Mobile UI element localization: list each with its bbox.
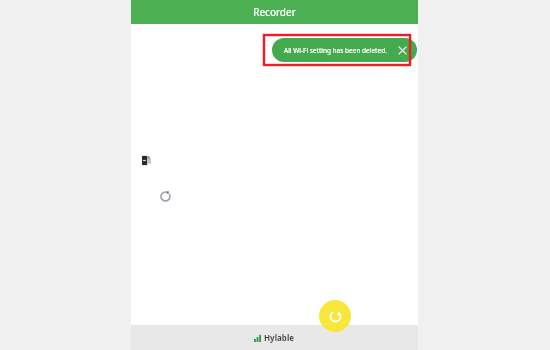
other: Loading (160, 191, 171, 202)
button[interactable]: Dismiss notification (396, 44, 408, 56)
button[interactable]: Hylable (250, 330, 299, 345)
staticText: All Wi-Fi setting has been deleted. (284, 46, 387, 55)
button[interactable]: All Wi-Fi setting has been deleted. (272, 38, 417, 62)
staticText: Hylable (264, 332, 295, 343)
other: Image placeholder (142, 155, 152, 166)
button[interactable]: Refresh (319, 300, 351, 332)
staticText: Recorder (253, 5, 296, 19)
